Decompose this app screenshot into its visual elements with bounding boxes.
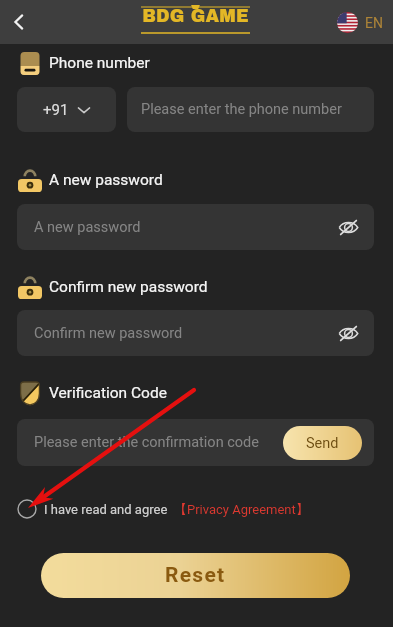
button[interactable]: Send <box>283 426 362 460</box>
button[interactable]: Show password <box>336 215 360 239</box>
staticText: Please enter the confirmation code <box>34 434 259 451</box>
staticText: 【Privacy Agreement】 <box>174 501 309 517</box>
staticText: A new password <box>49 171 163 189</box>
button[interactable]: Please enter the phone number <box>127 87 374 132</box>
staticText: Please enter the phone number <box>141 101 342 118</box>
button[interactable]: +91 <box>17 87 116 132</box>
button[interactable]: Show password <box>336 321 360 345</box>
staticText: Send <box>306 435 339 452</box>
staticText: BDG GAME <box>141 7 250 26</box>
button[interactable]: Please enter the confirmation code <box>17 419 374 466</box>
staticText: EN <box>365 15 383 31</box>
button[interactable]: Back <box>2 5 36 39</box>
button[interactable]: Confirm new password <box>17 310 374 356</box>
button[interactable]: EN <box>337 12 383 33</box>
button[interactable]: I have read and agree <box>17 498 309 520</box>
button[interactable]: A new password <box>17 204 374 250</box>
staticText: Phone number <box>49 54 150 72</box>
staticText: I have read and agree <box>44 502 168 517</box>
staticText: Confirm new password <box>34 325 183 342</box>
staticText: Reset <box>165 563 226 588</box>
staticText: +91 <box>43 101 69 119</box>
staticText: Confirm new password <box>49 278 208 296</box>
staticText: Verification Code <box>49 384 167 402</box>
staticText: A new password <box>34 219 141 236</box>
button[interactable]: Reset <box>41 553 350 598</box>
